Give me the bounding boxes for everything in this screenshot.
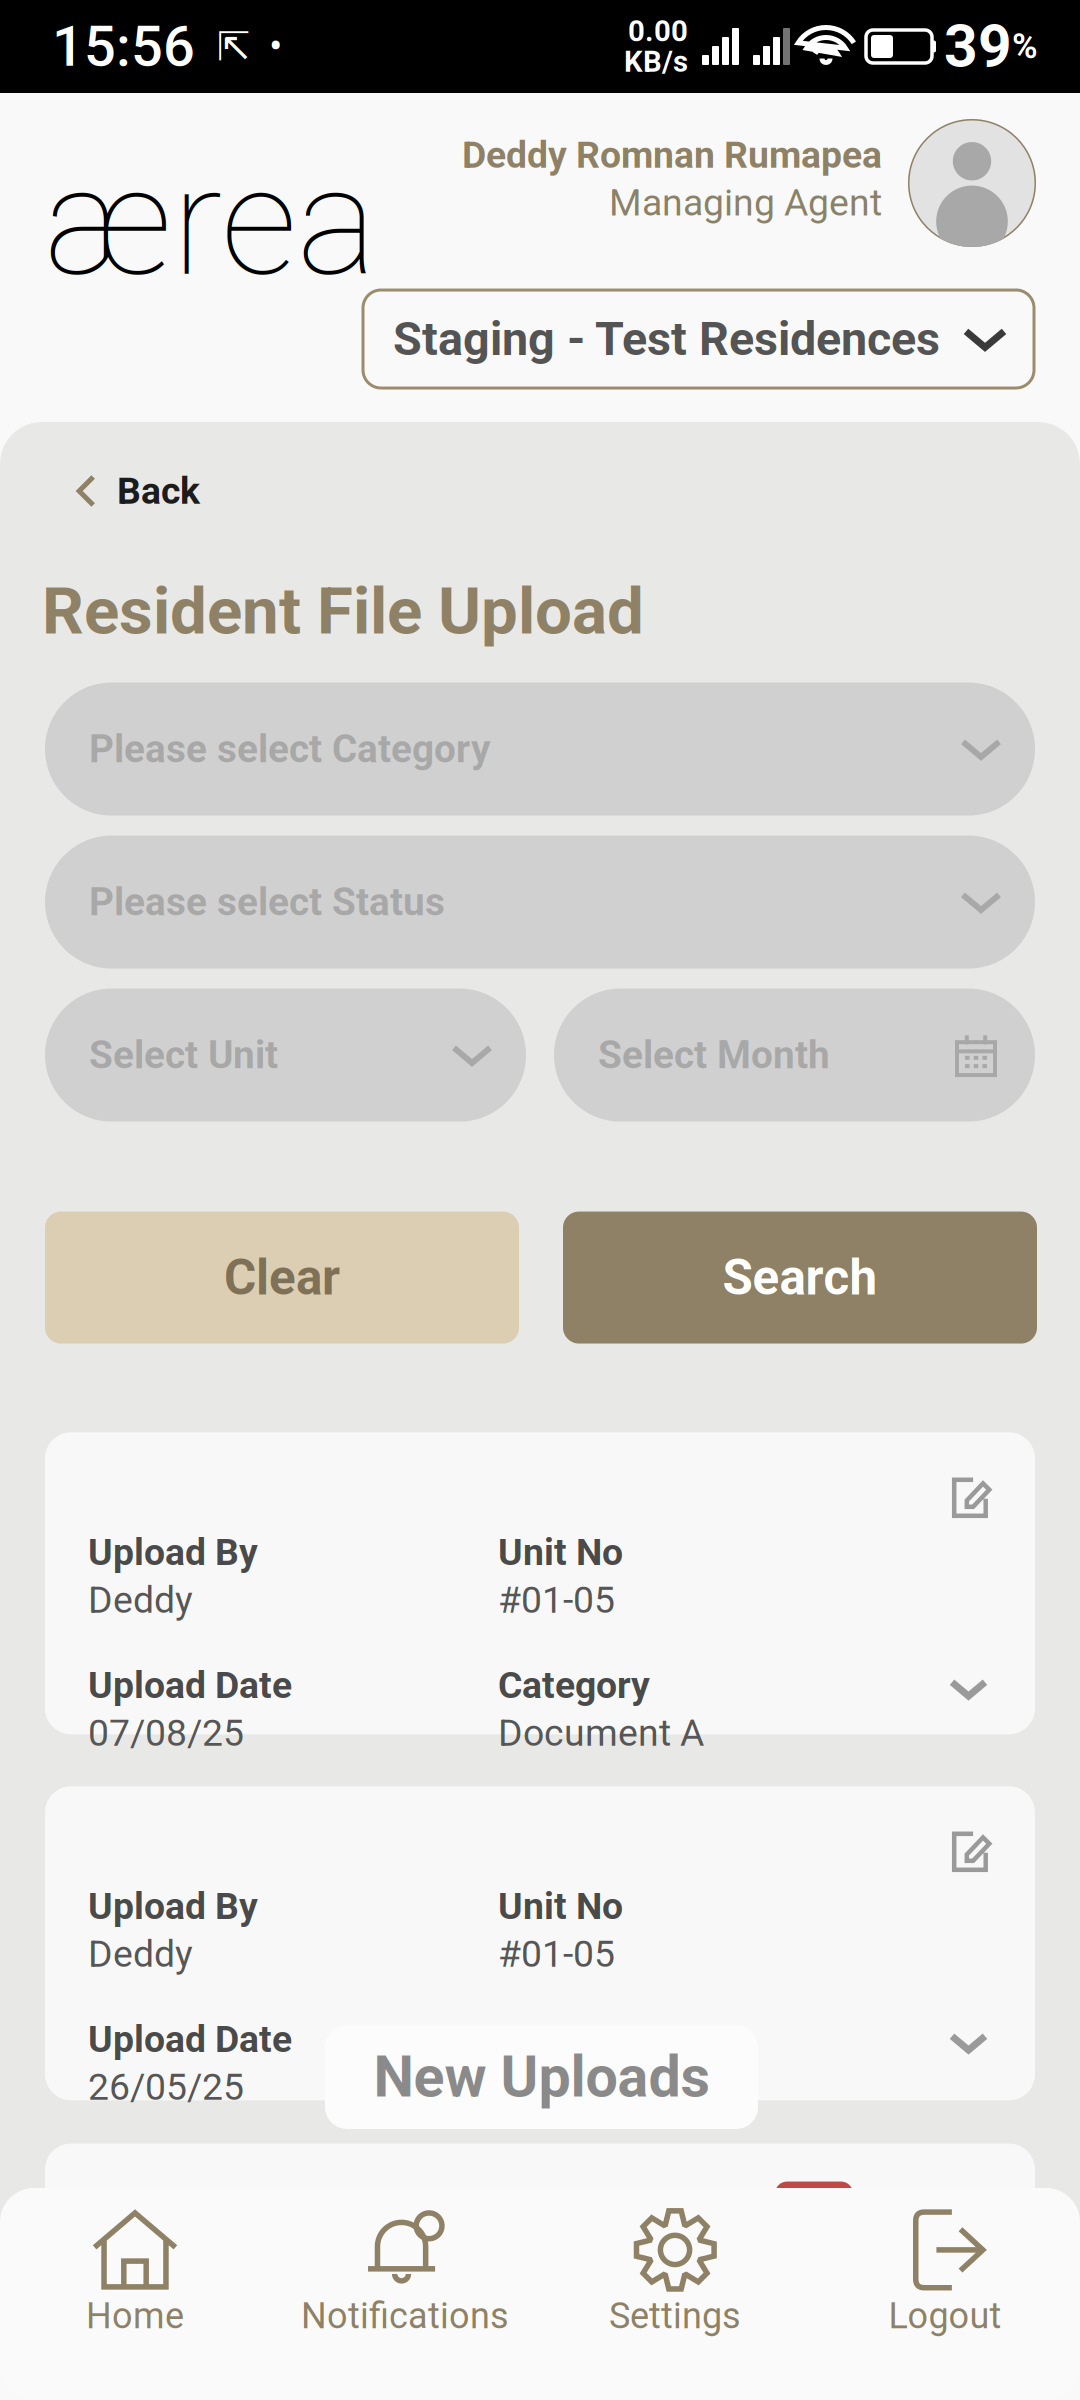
staticText: 15:56 [52,14,195,79]
staticText: Upload Date [88,1663,292,1707]
button[interactable]: Notifications [270,2188,540,2400]
button[interactable]: Expand [952,2026,985,2059]
staticText: Resident File Upload [42,573,644,650]
staticText: Settings [609,2295,741,2337]
button[interactable]: New Uploads [325,2025,758,2129]
staticText: ⇱ [217,23,251,70]
button[interactable]: Back [73,462,200,520]
button[interactable]: Please select Status [45,836,1035,969]
staticText: Clear [224,1249,340,1306]
staticText: Upload Date [88,2017,292,2061]
staticText: Document A [498,1711,704,1755]
staticText: Deddy [88,1932,193,1976]
button[interactable]: Please select Category [45,683,1035,816]
staticText: Deddy [88,1578,193,1622]
staticText: Category [498,2017,650,2061]
button[interactable]: Select Month [554,989,1035,1122]
staticText: ærea [44,134,377,311]
button[interactable]: Edit upload [947,1475,992,1520]
button[interactable]: Settings [540,2188,810,2400]
button[interactable]: Home [0,2188,270,2400]
staticText: • [269,23,282,70]
staticText: Notifications [301,2295,509,2337]
staticText: Unit No [498,1884,623,1928]
staticText: #01-05 [498,1932,615,1976]
staticText: Please select Category [89,726,490,772]
button[interactable]: Expand [952,1672,985,1705]
button[interactable]: Staging - Test Residences [363,290,1034,388]
staticText: Upload By [88,1884,258,1928]
staticText: Managing Agent [609,181,882,224]
staticText: Please select Status [89,879,445,925]
staticText: Deddy Romnan Rumapea [462,133,882,177]
staticText: KB/s [624,44,688,79]
staticText: Home [86,2295,184,2337]
button[interactable]: Logout [810,2188,1080,2400]
staticText: 39 [944,12,1012,81]
staticText: Search [722,1249,877,1306]
button[interactable]: Search [563,1212,1037,1344]
staticText: Upload By [88,1530,258,1574]
staticText: Logout [888,2295,1001,2337]
staticText: New Uploads [373,2043,709,2111]
staticText: 26/05/25 [88,2065,244,2109]
staticText: Staging - Test Residences [393,312,940,366]
staticText: Category [498,1663,650,1707]
staticText: 0.00 [628,14,688,48]
button[interactable]: Edit upload [947,1829,992,1874]
staticText: Select Month [598,1032,830,1078]
button[interactable]: Clear [45,1212,519,1344]
staticText: % [1012,26,1038,67]
button[interactable]: Select Unit [45,989,526,1122]
staticText: 07/08/25 [88,1711,244,1755]
staticText: Select Unit [89,1032,278,1078]
staticText: Unit No [498,1530,623,1574]
staticText: Back [117,469,200,513]
staticText: #01-05 [498,1578,615,1622]
